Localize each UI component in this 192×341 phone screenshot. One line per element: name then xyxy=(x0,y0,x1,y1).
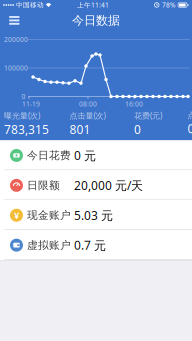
staticText: 日限额 xyxy=(27,179,60,192)
staticText: 点击量(次) xyxy=(69,110,105,121)
button[interactable]: 日限额 xyxy=(0,170,192,200)
staticText: 曝光量(次) xyxy=(4,110,40,121)
staticText: 花费(元) xyxy=(134,110,162,121)
staticText: 中国移动 xyxy=(16,1,44,9)
staticText: 78% xyxy=(162,1,176,9)
staticText: 08:00 xyxy=(79,100,97,108)
staticText: 今日花费 xyxy=(27,149,71,162)
staticText: 801 xyxy=(69,121,90,137)
staticText: 100000 xyxy=(4,64,28,72)
staticText: 5.03 元 xyxy=(74,207,113,223)
staticText: 上午11:41 xyxy=(77,1,109,9)
button[interactable]: 菜单 xyxy=(0,16,19,25)
staticText: 0 xyxy=(134,121,141,137)
button[interactable]: 今日花费 xyxy=(0,140,192,170)
staticText: 0.7 元 xyxy=(74,237,106,253)
staticText: 现金账户 xyxy=(27,209,71,222)
staticText: ¥ xyxy=(14,209,19,221)
staticText: 0 元 xyxy=(74,147,96,163)
staticText: 20,000 元/天 xyxy=(74,177,143,193)
staticText: 11-19 xyxy=(22,100,40,108)
staticText: 0 xyxy=(187,121,192,137)
staticText: 点击均价 xyxy=(187,110,192,120)
staticText: 0 xyxy=(21,92,25,101)
staticText: 今日数据 xyxy=(72,13,120,28)
staticText: 16:00 xyxy=(125,100,143,108)
staticText: 200000 xyxy=(4,35,28,44)
button[interactable]: 虚拟账户 xyxy=(0,230,192,260)
staticText: 783,315 xyxy=(4,121,49,137)
button[interactable]: ¥ xyxy=(0,200,192,230)
staticText: 虚拟账户 xyxy=(27,239,71,252)
